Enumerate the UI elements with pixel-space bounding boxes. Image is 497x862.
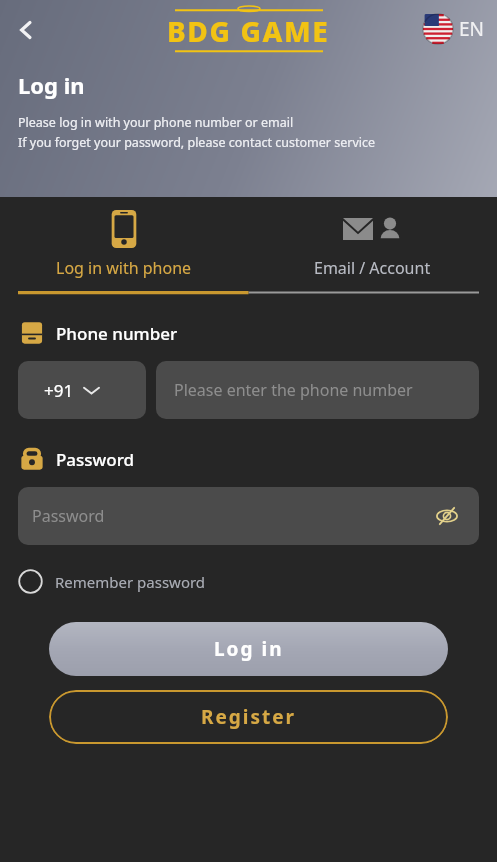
staticText: Please log in with your phone number or … xyxy=(18,114,294,131)
button[interactable]: Back xyxy=(4,8,48,52)
button[interactable]: Password xyxy=(18,487,479,545)
staticText: Register xyxy=(201,704,297,730)
staticText: +91 xyxy=(44,379,74,402)
button[interactable]: Please enter the phone number xyxy=(156,361,479,419)
staticText: Password xyxy=(56,448,135,471)
staticText: Phone number xyxy=(56,322,178,345)
staticText: Please enter the phone number xyxy=(174,379,413,401)
button[interactable]: Log in xyxy=(49,622,448,676)
button[interactable]: EN xyxy=(419,12,489,46)
button[interactable]: Register xyxy=(49,690,448,744)
staticText: If you forget your password, please cont… xyxy=(18,134,376,151)
staticText: Remember password xyxy=(55,572,206,592)
staticText: EN xyxy=(459,16,485,42)
staticText: Password xyxy=(32,505,431,527)
staticText: Email / Account xyxy=(314,257,431,279)
button[interactable]: +91 xyxy=(18,361,146,419)
staticText: Log in with phone xyxy=(56,257,192,279)
button[interactable]: Log in with phone xyxy=(0,197,248,291)
button[interactable]: Email / Account xyxy=(248,197,497,291)
staticText: Log in xyxy=(18,70,85,100)
button[interactable]: Show password xyxy=(431,500,463,532)
button[interactable]: Remember password xyxy=(18,567,214,596)
staticText: BDG GAME xyxy=(167,12,330,50)
staticText: Log in xyxy=(214,636,284,662)
